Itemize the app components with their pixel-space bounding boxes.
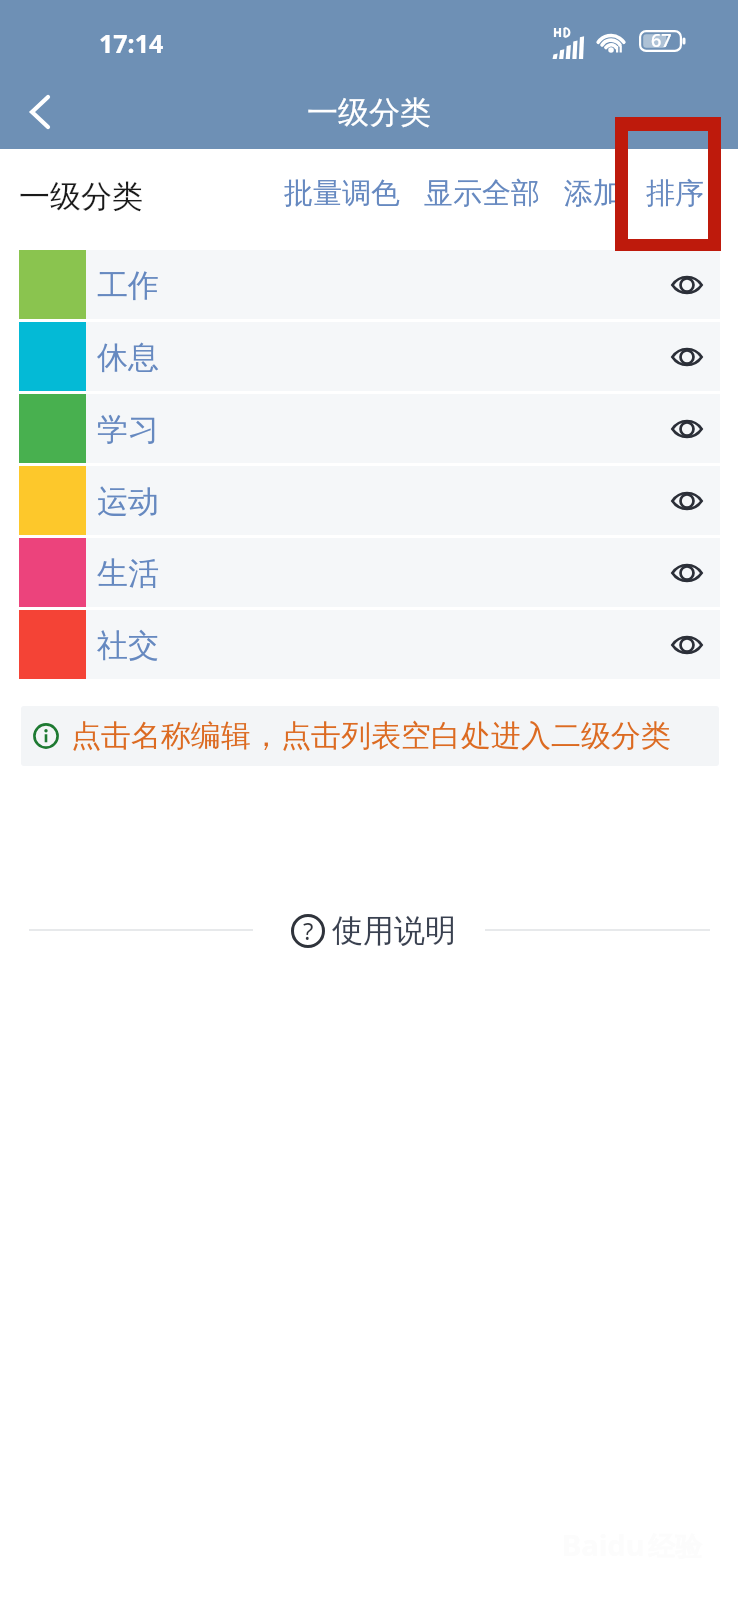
staticText: 添加	[564, 175, 622, 212]
staticText: 社交	[97, 626, 159, 665]
button[interactable]: Toggle visibility	[658, 544, 716, 602]
button[interactable]: Toggle visibility	[658, 256, 716, 314]
staticText: 使用说明	[332, 911, 456, 950]
button[interactable]: 运动	[19, 466, 720, 535]
button[interactable]: ?	[253, 911, 485, 950]
button[interactable]: Back	[0, 75, 78, 149]
button[interactable]: 社交	[19, 610, 720, 679]
staticText: 生活	[97, 554, 159, 593]
button[interactable]: 显示全部	[419, 163, 545, 224]
staticText: 67	[651, 28, 672, 53]
button[interactable]: 点击名称编辑，点击列表空白处进入二级分类	[21, 706, 719, 766]
staticText: 休息	[97, 338, 159, 377]
staticText: 显示全部	[424, 175, 540, 212]
button[interactable]: 批量调色	[279, 163, 405, 224]
staticText: 17:14	[99, 26, 164, 60]
button[interactable]: 添加	[559, 163, 627, 224]
button[interactable]: 排序	[641, 163, 709, 224]
staticText: 排序	[646, 175, 704, 212]
staticText: 点击名称编辑，点击列表空白处进入二级分类	[71, 717, 671, 755]
button[interactable]: Toggle visibility	[658, 328, 716, 386]
button[interactable]: 休息	[19, 322, 720, 391]
staticText: 批量调色	[284, 175, 400, 212]
staticText: ?	[303, 914, 314, 947]
button[interactable]: 工作	[19, 250, 720, 319]
button[interactable]: Toggle visibility	[658, 472, 716, 530]
button[interactable]: 学习	[19, 394, 720, 463]
button[interactable]: Toggle visibility	[658, 400, 716, 458]
staticText: 运动	[97, 482, 159, 521]
button[interactable]: 生活	[19, 538, 720, 607]
staticText: 一级分类	[19, 177, 143, 216]
button[interactable]: Toggle visibility	[658, 616, 716, 674]
staticText: 学习	[97, 410, 159, 449]
staticText: 工作	[97, 266, 159, 305]
staticText: 一级分类	[307, 93, 431, 132]
